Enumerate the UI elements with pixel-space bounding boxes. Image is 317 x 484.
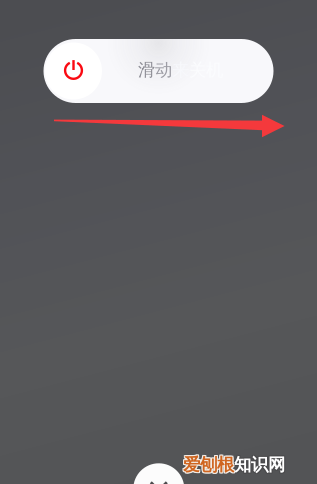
staticText: 爱刨根 bbox=[184, 454, 235, 475]
staticText: 爱刨根 bbox=[182, 453, 233, 474]
staticText: 知识网 bbox=[233, 455, 284, 476]
staticText: 动 bbox=[155, 59, 172, 81]
staticText: 爱刨根 bbox=[182, 455, 233, 476]
staticText: 知识网 bbox=[233, 453, 284, 474]
staticText: 爱刨根 bbox=[182, 454, 233, 475]
staticText: 爱刨根 bbox=[184, 455, 235, 476]
button[interactable]: 滑 bbox=[43, 39, 273, 103]
staticText: 爱刨根 bbox=[183, 453, 234, 474]
staticText: 知识网 bbox=[235, 455, 286, 476]
staticText: 知识网 bbox=[234, 453, 285, 474]
staticText: 滑 bbox=[138, 59, 155, 81]
staticText: 知识网 bbox=[235, 454, 286, 475]
staticText: 知识网 bbox=[234, 455, 285, 476]
staticText: 爱刨根 bbox=[183, 454, 234, 475]
staticText: 爱刨根 bbox=[184, 453, 235, 474]
staticText: 知识网 bbox=[234, 454, 285, 475]
button[interactable]: Cancel bbox=[133, 463, 184, 484]
staticText: 爱刨根 bbox=[183, 455, 234, 476]
staticText: 知识网 bbox=[235, 453, 286, 474]
staticText: 知识网 bbox=[233, 454, 284, 475]
staticText: 知识网 bbox=[234, 454, 285, 475]
staticText: 爱刨根 bbox=[183, 454, 234, 475]
